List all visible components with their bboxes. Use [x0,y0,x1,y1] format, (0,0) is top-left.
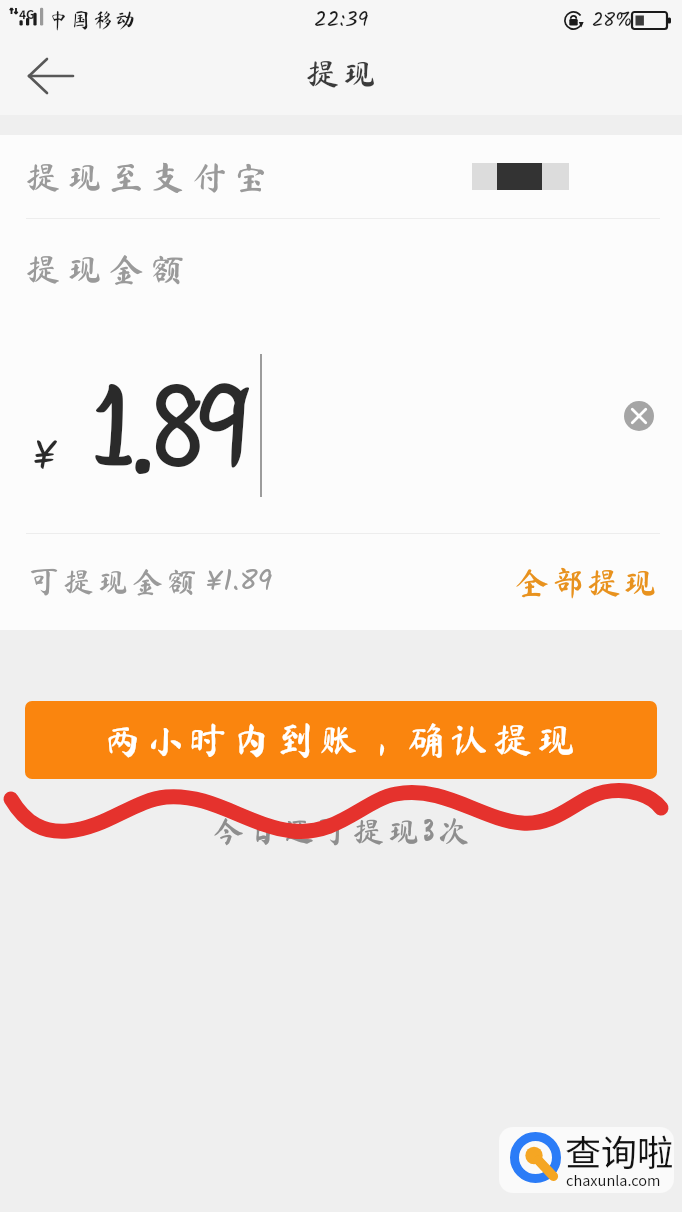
staticText: 提现至支付宝 [26,160,276,194]
button[interactable]: Back [0,40,102,115]
button[interactable]: 两小时内到账，确认提现 [25,701,657,779]
button[interactable]: 提现至支付宝 [0,135,682,218]
staticText: 两小时内到账，确认提现 [102,721,581,759]
staticText: 中国移动 [48,10,137,31]
staticText: 1.89 [92,371,244,486]
staticText: 28% [592,5,632,35]
staticText: 可提现金额 [29,567,202,597]
staticText: 今日还可提现3次 [213,816,474,847]
staticText: 查询啦 [565,1127,674,1176]
staticText: 22:39 [314,3,369,38]
button[interactable]: 全部提现 [502,558,670,607]
staticText: ¥1.89 [206,558,273,606]
staticText: 4G [19,5,35,22]
staticText: chaxunla.com [566,1169,661,1190]
staticText: 提现金额 [26,252,193,286]
staticText: 提现 [304,57,378,90]
staticText: 全部提现 [514,566,658,599]
button[interactable]: Clear amount [624,401,654,431]
staticText: ¥ [33,425,57,492]
